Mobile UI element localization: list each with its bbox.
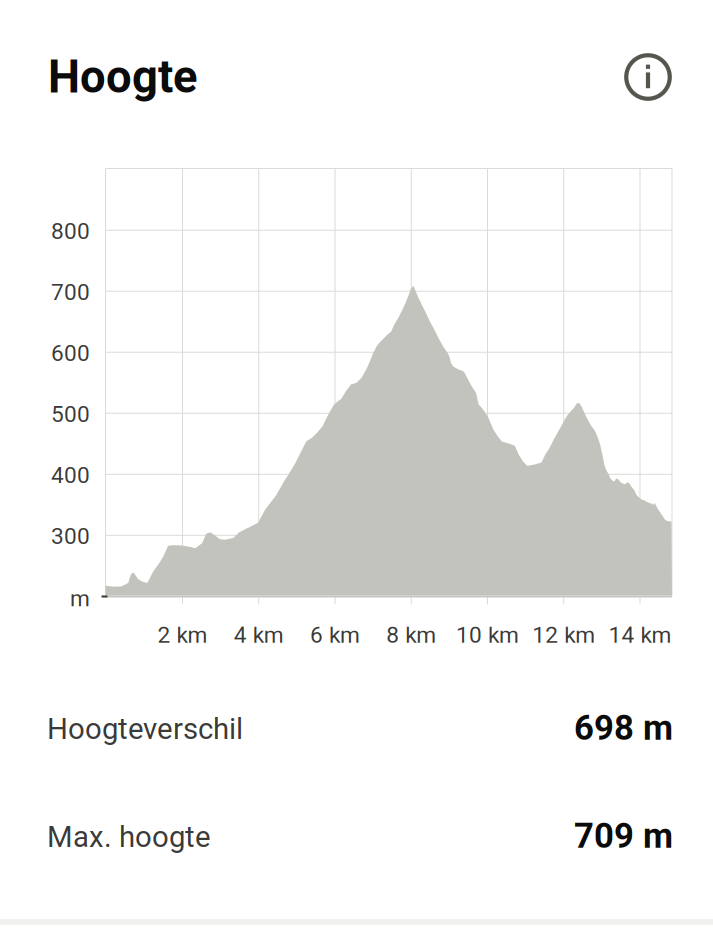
staticText: 12 km	[532, 622, 595, 648]
staticText: Hoogte	[48, 50, 197, 103]
staticText: m	[70, 585, 90, 612]
staticText: 800	[51, 218, 90, 244]
staticText: 2 km	[157, 622, 207, 648]
staticText: 10 km	[456, 622, 519, 648]
staticText: 698 m	[574, 708, 673, 748]
staticText: 700	[51, 279, 90, 305]
staticText: 400	[51, 462, 90, 489]
button[interactable]: Info	[622, 51, 674, 103]
staticText: 300	[51, 523, 90, 550]
staticText: 600	[51, 340, 90, 367]
staticText: 500	[51, 401, 90, 428]
staticText: 4 km	[234, 622, 284, 648]
staticText: Hoogteverschil	[47, 712, 243, 746]
staticText: 709 m	[574, 816, 673, 856]
staticText: 14 km	[608, 622, 671, 648]
staticText: 6 km	[310, 622, 360, 648]
staticText: 8 km	[386, 622, 436, 648]
staticText: Max. hoogte	[47, 820, 211, 854]
